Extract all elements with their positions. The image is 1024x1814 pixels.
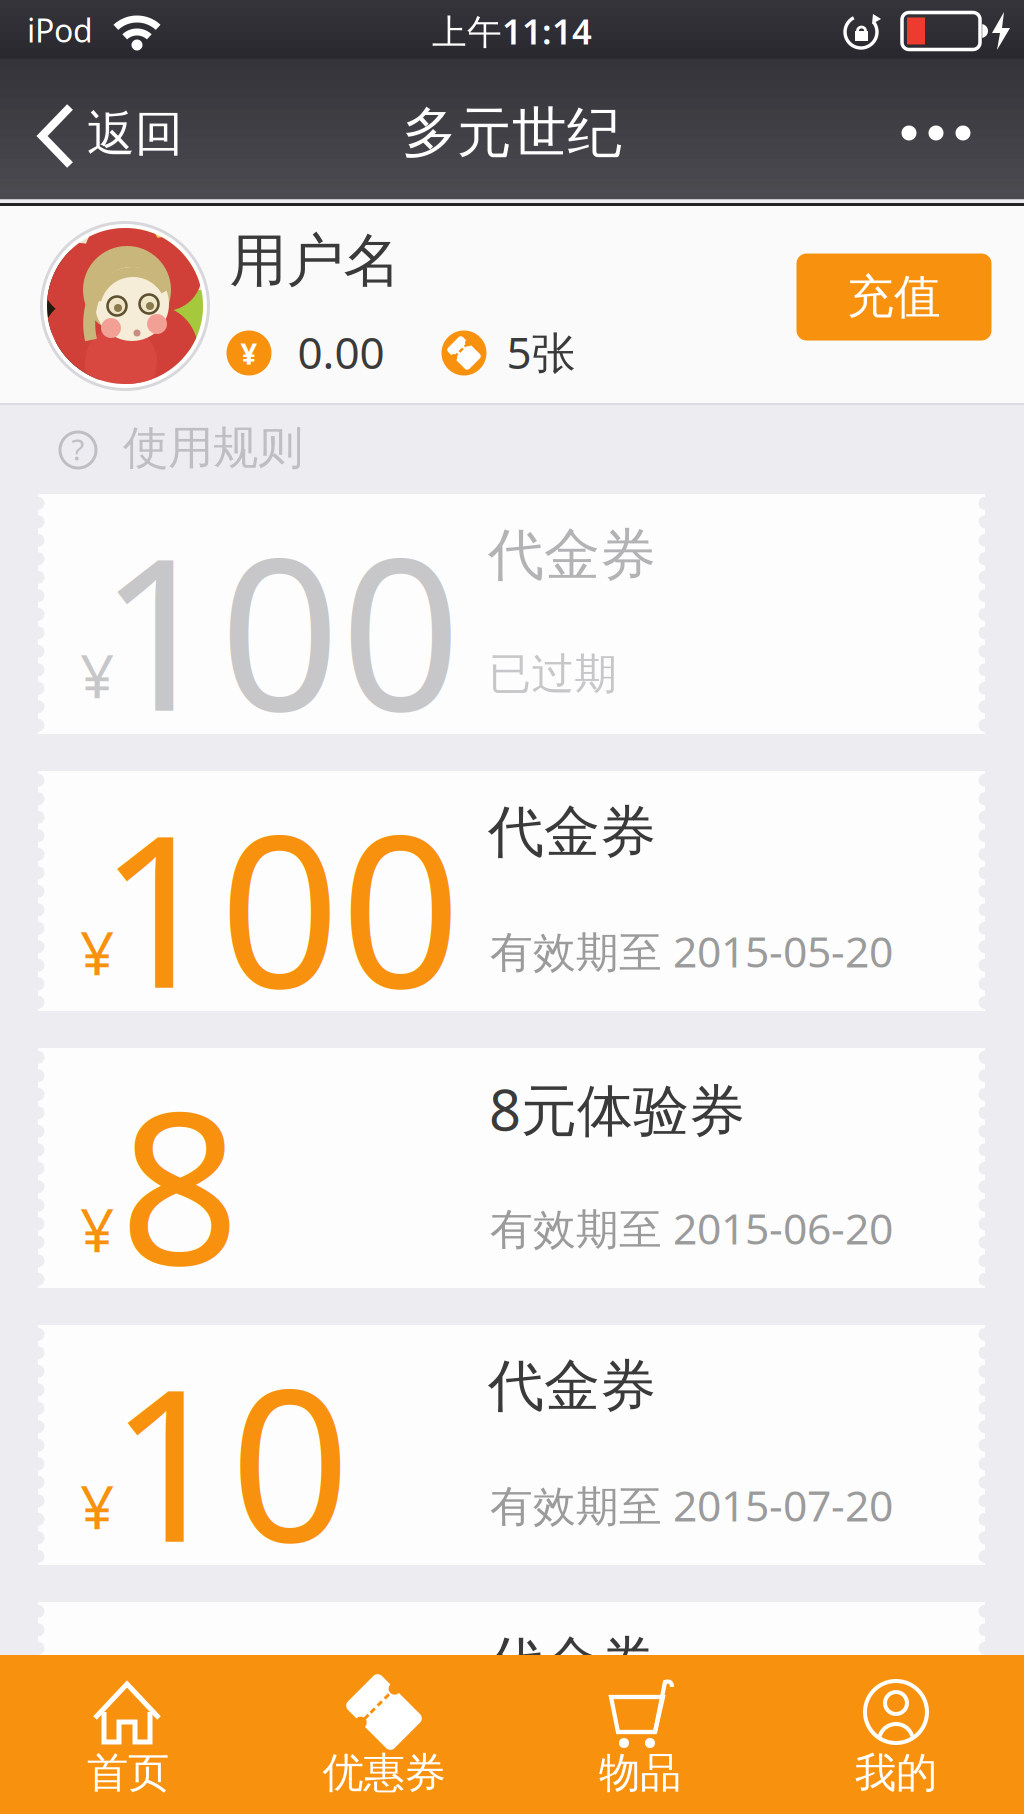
- button[interactable]: ¥: [0, 0, 1024, 1814]
- button[interactable]: Back: [0, 0, 1024, 1814]
- staticText: iPod: [27, 9, 93, 51]
- staticText: ¥: [240, 333, 257, 372]
- button[interactable]: 优惠券: [0, 0, 1024, 1814]
- button[interactable]: 我的: [0, 0, 1024, 1814]
- button[interactable]: ¥: [0, 0, 1024, 1814]
- button[interactable]: 充值: [796, 253, 991, 340]
- staticText: 首页: [87, 1748, 169, 1798]
- staticText: 优惠券: [322, 1748, 445, 1798]
- staticText: 代金券: [488, 1352, 656, 1420]
- staticText: 代金券: [488, 798, 656, 866]
- button[interactable]: More: [0, 0, 1024, 1814]
- staticText: 多元世纪: [402, 99, 622, 166]
- staticText: 充值: [847, 268, 941, 326]
- staticText: ¥: [80, 635, 114, 715]
- staticText: ¥: [80, 912, 114, 992]
- staticText: 上午11:14: [432, 8, 592, 54]
- staticText: 10: [109, 1320, 351, 1600]
- button[interactable]: ¥: [0, 0, 1024, 1814]
- staticText: 已过期: [488, 648, 617, 700]
- button[interactable]: ¥: [0, 0, 1024, 1814]
- staticText: 8元体验券: [489, 1072, 745, 1146]
- staticText: 有效期至 2015-08-20: [490, 1754, 893, 1810]
- staticText: 我的: [855, 1748, 937, 1798]
- staticText: 代金券: [488, 521, 656, 589]
- staticText: 8: [119, 1043, 240, 1323]
- staticText: 物品: [599, 1748, 681, 1798]
- staticText: ?: [71, 429, 84, 468]
- staticText: 使用规则: [123, 420, 303, 476]
- staticText: ¥: [80, 1466, 114, 1546]
- staticText: 0.00: [297, 323, 384, 381]
- button[interactable]: 物品: [0, 0, 1024, 1814]
- button[interactable]: ¥: [0, 0, 1024, 1814]
- staticText: 代金券: [488, 1629, 656, 1697]
- staticText: 返回: [87, 104, 183, 163]
- staticText: 100: [98, 766, 461, 1046]
- staticText: 有效期至 2015-07-20: [490, 1477, 893, 1533]
- staticText: 有效期至 2015-06-20: [490, 1200, 893, 1256]
- staticText: 有效期至 2015-05-20: [490, 923, 893, 979]
- staticText: 5: [119, 1597, 240, 1814]
- staticText: 5张: [506, 323, 575, 381]
- staticText: ¥: [80, 1743, 114, 1814]
- button[interactable]: ?: [0, 0, 1024, 1814]
- button[interactable]: 首页: [0, 0, 1024, 1814]
- staticText: 100: [98, 489, 461, 769]
- staticText: 用户名: [229, 226, 400, 296]
- staticText: ¥: [80, 1189, 114, 1269]
